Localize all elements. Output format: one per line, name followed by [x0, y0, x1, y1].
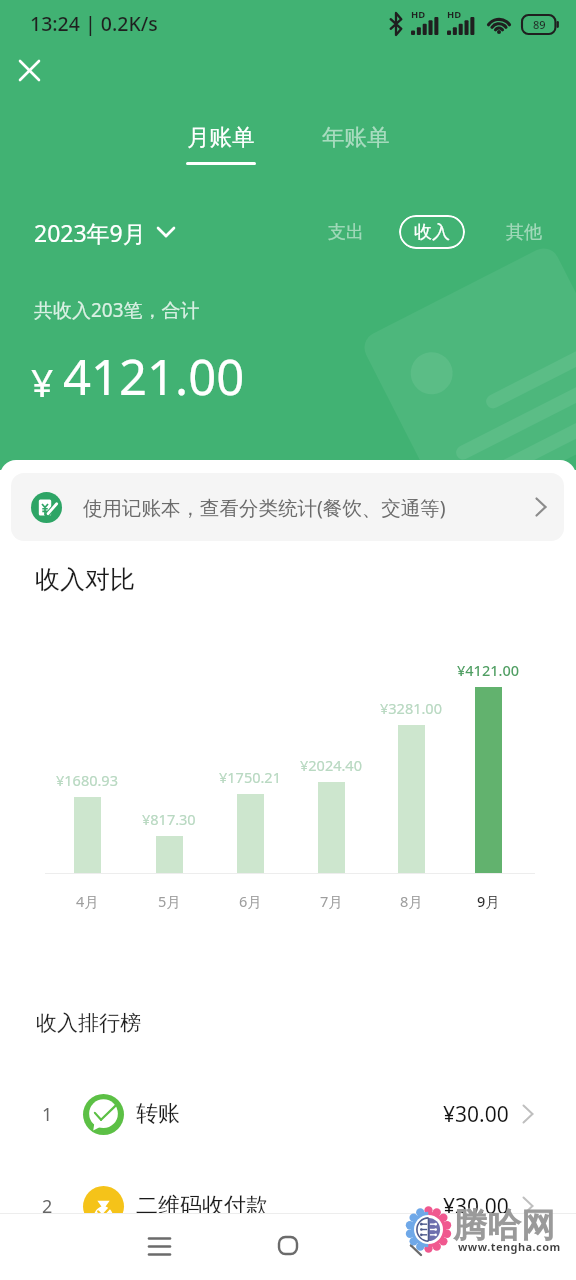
staticText: ¥3281.00: [380, 698, 442, 718]
staticText: 支出: [328, 221, 364, 244]
staticText: 收入排行榜: [36, 1010, 141, 1036]
staticText: 8月: [400, 891, 423, 911]
staticText: 年账单: [322, 123, 390, 151]
staticText: 使用记账本，查看分类统计(餐饮、交通等): [83, 494, 446, 521]
staticText: ¥1750.21: [219, 767, 281, 787]
staticText: www.tengha.com: [458, 1239, 561, 1254]
button[interactable]: 支出: [319, 214, 373, 251]
staticText: 9月: [477, 891, 500, 911]
staticText: 2023年9月: [34, 217, 146, 248]
staticText: 二维码收付款: [136, 1192, 268, 1220]
button[interactable]: 1: [0, 1070, 576, 1158]
staticText: 89: [533, 17, 546, 32]
button[interactable]: Back: [388, 1217, 444, 1273]
button[interactable]: Recent apps: [131, 1218, 187, 1274]
staticText: HD: [411, 8, 426, 21]
button[interactable]: Home: [260, 1217, 316, 1273]
staticText: 收入对比: [35, 564, 135, 595]
staticText: 2: [42, 1194, 53, 1219]
staticText: 6月: [239, 891, 262, 911]
staticText: 1: [42, 1102, 53, 1127]
staticText: 共收入203笔，合计: [34, 297, 200, 323]
staticText: 转账: [136, 1100, 180, 1128]
staticText: 5月: [158, 891, 181, 911]
staticText: 4121.00: [63, 343, 245, 410]
button[interactable]: 月账单: [176, 119, 266, 169]
staticText: 其他: [506, 221, 542, 244]
button[interactable]: 收入: [399, 215, 465, 249]
staticText: 腾哈网: [453, 1204, 555, 1247]
staticText: 4月: [76, 891, 99, 911]
staticText: ¥4121.00: [457, 660, 520, 680]
staticText: 月账单: [187, 123, 255, 151]
staticText: ¥: [31, 355, 54, 408]
button[interactable]: 使用记账本，查看分类统计(餐饮、交通等): [11, 473, 564, 541]
staticText: 收入: [414, 221, 450, 244]
button[interactable]: 2: [0, 1162, 576, 1250]
button[interactable]: 其他: [490, 214, 546, 251]
staticText: ¥817.30: [142, 809, 196, 829]
staticText: ¥30.00: [443, 1192, 509, 1221]
staticText: HD: [447, 8, 462, 21]
staticText: 7月: [320, 891, 343, 911]
staticText: ¥30.00: [443, 1100, 509, 1129]
button[interactable]: 2023年9月: [34, 210, 175, 254]
staticText: ¥1680.93: [56, 770, 118, 790]
button[interactable]: 年账单: [311, 119, 401, 169]
button[interactable]: Close: [7, 48, 51, 92]
staticText: ¥2024.40: [300, 755, 362, 775]
staticText: 13:24 | 0.2K/s: [30, 10, 158, 37]
